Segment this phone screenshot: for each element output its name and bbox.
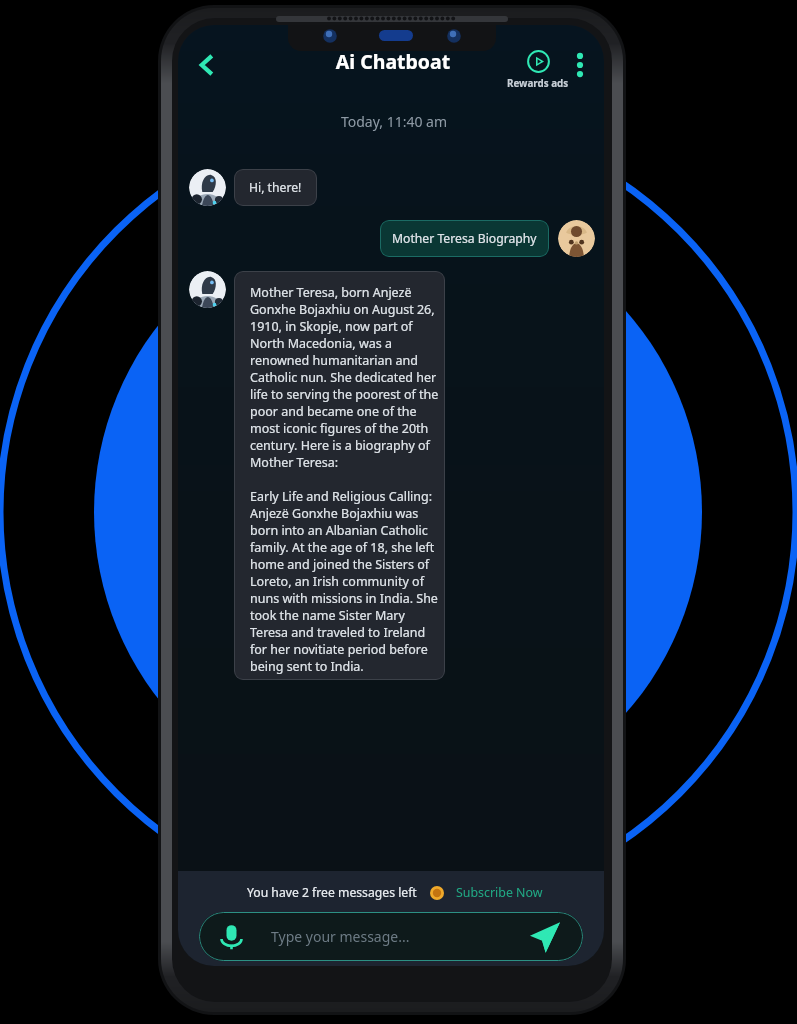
staticText: Mother Teresa, born Anjezë Gonxhe Bojaxh… (250, 284, 440, 675)
staticText: Rewards ads (507, 77, 569, 90)
button[interactable]: Subscribe Now (456, 884, 543, 901)
staticText: Mother Teresa Biography (392, 230, 537, 247)
button[interactable]: Back (190, 48, 224, 82)
staticText: Ai Chatboat (180, 48, 604, 75)
button[interactable]: Hi, there! (234, 169, 317, 206)
button[interactable]: Mother Teresa Biography (380, 220, 549, 257)
staticText: Hi, there! (249, 179, 302, 196)
button[interactable]: Rewards ads (507, 50, 569, 90)
staticText: You have 2 free messages left (247, 884, 417, 901)
staticText: Type your message... (271, 927, 410, 946)
button[interactable]: Mother Teresa, born Anjezë Gonxhe Bojaxh… (234, 271, 445, 680)
staticText: Today, 11:40 am (181, 112, 604, 131)
button[interactable]: Voice input (199, 912, 583, 961)
other: Send (529, 921, 561, 953)
button[interactable]: More options (566, 51, 594, 79)
other: Voice input (218, 923, 245, 950)
